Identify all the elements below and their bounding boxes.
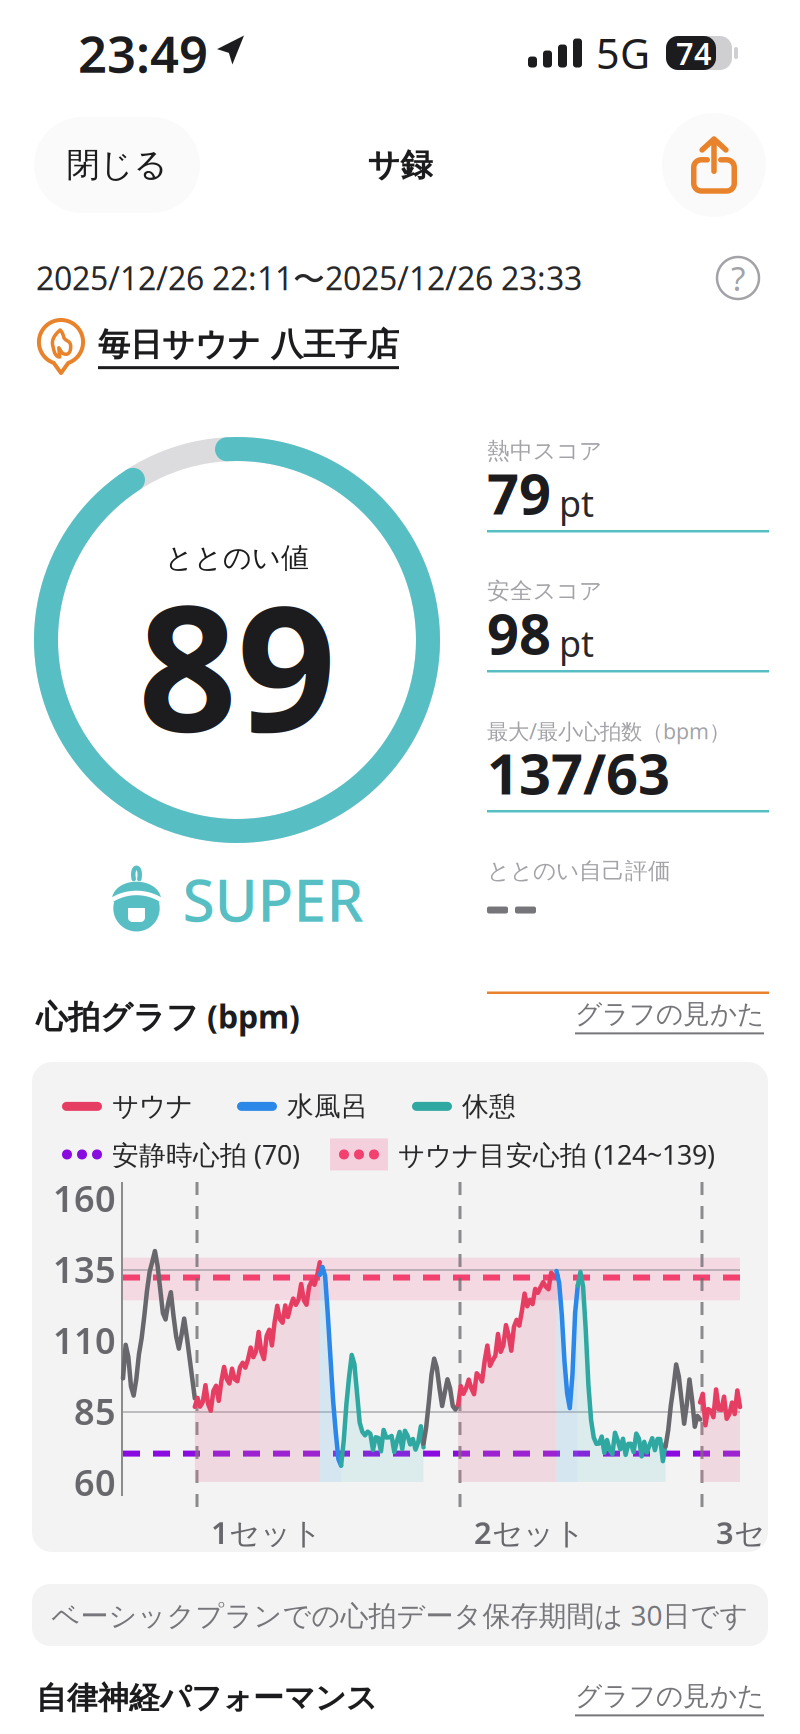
staticText: 閉じる: [66, 144, 167, 185]
staticText: 89: [138, 549, 336, 779]
button[interactable]: 閉じる: [34, 117, 200, 213]
staticText: 60: [74, 1458, 116, 1506]
staticText: 79: [487, 456, 551, 530]
staticText: 2セット: [474, 1512, 585, 1553]
staticText: 毎日サウナ 八王子店: [98, 325, 399, 364]
staticText: サウナ目安心拍 (124~139): [398, 1137, 715, 1172]
staticText: グラフの見かた: [575, 1680, 764, 1712]
staticText: 85: [74, 1387, 116, 1435]
staticText: サ録: [367, 145, 432, 185]
button[interactable]: Help: [712, 252, 764, 304]
staticText: グラフの見かた: [575, 998, 764, 1030]
staticText: 安全スコア: [487, 577, 602, 605]
staticText: ?: [731, 256, 745, 300]
staticText: 23:49: [78, 19, 208, 87]
button[interactable]: 毎日サウナ 八王子店: [36, 318, 399, 376]
button[interactable]: グラフの見かた: [575, 1680, 764, 1716]
staticText: 安静時心拍 (70): [112, 1137, 300, 1172]
staticText: pt: [559, 479, 594, 527]
button[interactable]: Share: [662, 113, 766, 217]
button[interactable]: グラフの見かた: [575, 998, 764, 1034]
staticText: pt: [559, 619, 594, 667]
staticText: 1セット: [211, 1512, 322, 1553]
staticText: ベーシックプランでの心拍データ保存期間は 30日です: [51, 1596, 748, 1634]
staticText: 自律神経パフォーマンス: [36, 1679, 377, 1717]
staticText: ととのい自己評価: [487, 857, 671, 885]
staticText: 98: [487, 596, 551, 670]
staticText: サウナ: [112, 1090, 193, 1123]
staticText: 160: [53, 1174, 116, 1222]
staticText: 3セ: [716, 1512, 765, 1553]
staticText: 2025/12/26 22:11〜2025/12/26 23:33: [36, 257, 582, 299]
staticText: 5G: [596, 26, 650, 80]
staticText: 水風呂: [287, 1090, 368, 1123]
staticText: 熱中スコア: [487, 437, 602, 465]
staticText: 74: [676, 33, 712, 73]
staticText: 135: [53, 1245, 116, 1293]
staticText: ととのい値: [165, 541, 309, 575]
staticText: SUPER: [182, 860, 363, 938]
staticText: 137/63: [487, 736, 670, 810]
staticText: 心拍グラフ (bpm): [36, 995, 300, 1037]
staticText: 110: [53, 1316, 116, 1364]
staticText: 休憩: [462, 1090, 516, 1123]
staticText: 最大/最小心拍数（bpm）: [487, 717, 730, 745]
